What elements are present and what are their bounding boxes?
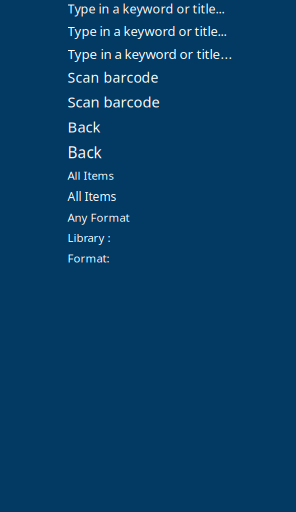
staticText: Type in a keyword or title... [67,22,226,40]
staticText: Format: [67,250,109,266]
staticText: Back [67,117,100,137]
staticText: All Items [67,188,116,204]
staticText: Back [67,142,101,163]
staticText: Any Format [67,209,129,225]
staticText: Scan barcode [67,92,159,112]
staticText: Type in a keyword or title... [67,0,224,17]
staticText: All Items [67,168,113,183]
staticText: Library : [67,230,110,245]
staticText: Type in a keyword or title... [67,45,232,63]
staticText: Scan barcode [67,68,158,87]
